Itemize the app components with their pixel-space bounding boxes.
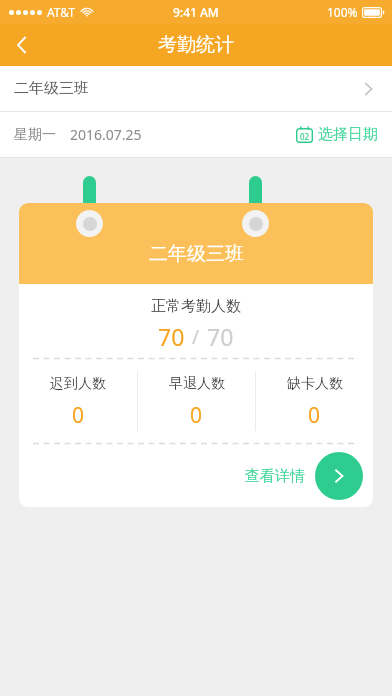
button[interactable]: Back — [0, 24, 44, 66]
staticText: 2016.07.25 — [70, 125, 142, 144]
staticText: AT&T — [47, 4, 75, 20]
staticText: 0 — [72, 401, 85, 430]
staticText: 9:41 AM — [173, 4, 219, 20]
button[interactable]: 查看详情 — [245, 452, 363, 500]
staticText: 0 — [308, 401, 321, 430]
button[interactable]: 二年级三班 — [0, 66, 392, 111]
button[interactable]: 02 — [296, 120, 378, 149]
staticText: 二年级三班 — [14, 79, 89, 98]
staticText: 70 — [207, 321, 234, 352]
staticText: 早退人数 — [169, 375, 225, 393]
staticText: 考勤统计 — [158, 33, 234, 57]
staticText: 选择日期 — [318, 125, 378, 144]
staticText: 迟到人数 — [50, 375, 106, 393]
staticText: / — [192, 324, 200, 350]
staticText: 70 — [158, 321, 185, 352]
staticText: 二年级三班 — [149, 242, 244, 266]
staticText: 02 — [300, 131, 310, 142]
staticText: 星期一 — [14, 126, 56, 144]
staticText: 正常考勤人数 — [151, 297, 241, 316]
staticText: 0 — [190, 401, 203, 430]
staticText: 缺卡人数 — [287, 375, 343, 393]
staticText: 100% — [327, 4, 358, 20]
staticText: 查看详情 — [245, 467, 305, 486]
